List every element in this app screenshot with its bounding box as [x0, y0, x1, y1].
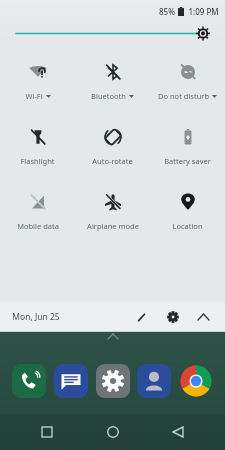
staticText: 85%: [159, 6, 175, 17]
staticText: Location: [172, 221, 203, 231]
button[interactable]: Messages: [54, 364, 88, 398]
staticText: Battery saver: [164, 156, 211, 166]
staticText: 1:09 PM: [188, 6, 219, 17]
button[interactable]: Airplane mode: [75, 190, 150, 233]
staticText: Flashlight: [20, 156, 55, 166]
button[interactable]: Brightness: [0, 22, 225, 44]
button[interactable]: Settings: [161, 305, 185, 329]
staticText: Mon, Jun 25: [12, 311, 60, 323]
staticText: Bluetooth: [91, 91, 126, 101]
button[interactable]: Location: [150, 190, 225, 233]
button[interactable]: Contacts: [137, 364, 171, 398]
button[interactable]: Back: [160, 414, 196, 450]
button[interactable]: Auto-rotate: [75, 125, 150, 168]
staticText: Auto-rotate: [92, 156, 133, 166]
button[interactable]: Bluetooth: [75, 60, 150, 103]
button[interactable]: Mon, Jun 25: [12, 311, 60, 323]
button[interactable]: Battery saver: [150, 125, 225, 168]
staticText: Airplane mode: [87, 221, 139, 231]
button[interactable]: Phone: [12, 364, 46, 398]
button[interactable]: Recents: [29, 414, 65, 450]
button[interactable]: Home: [95, 414, 131, 450]
staticText: Wi-Fi: [25, 91, 43, 101]
button[interactable]: Edit: [129, 305, 153, 329]
button[interactable]: Flashlight: [0, 125, 75, 168]
button[interactable]: Chrome: [179, 364, 213, 398]
staticText: Do not disturb: [158, 91, 209, 101]
button[interactable]: Collapse: [191, 305, 215, 329]
staticText: Mobile data: [17, 221, 59, 231]
button[interactable]: Wi-Fi: [0, 60, 75, 103]
button[interactable]: Mobile data: [0, 190, 75, 233]
button[interactable]: Settings: [96, 364, 130, 398]
button[interactable]: Do not disturb: [150, 60, 225, 103]
